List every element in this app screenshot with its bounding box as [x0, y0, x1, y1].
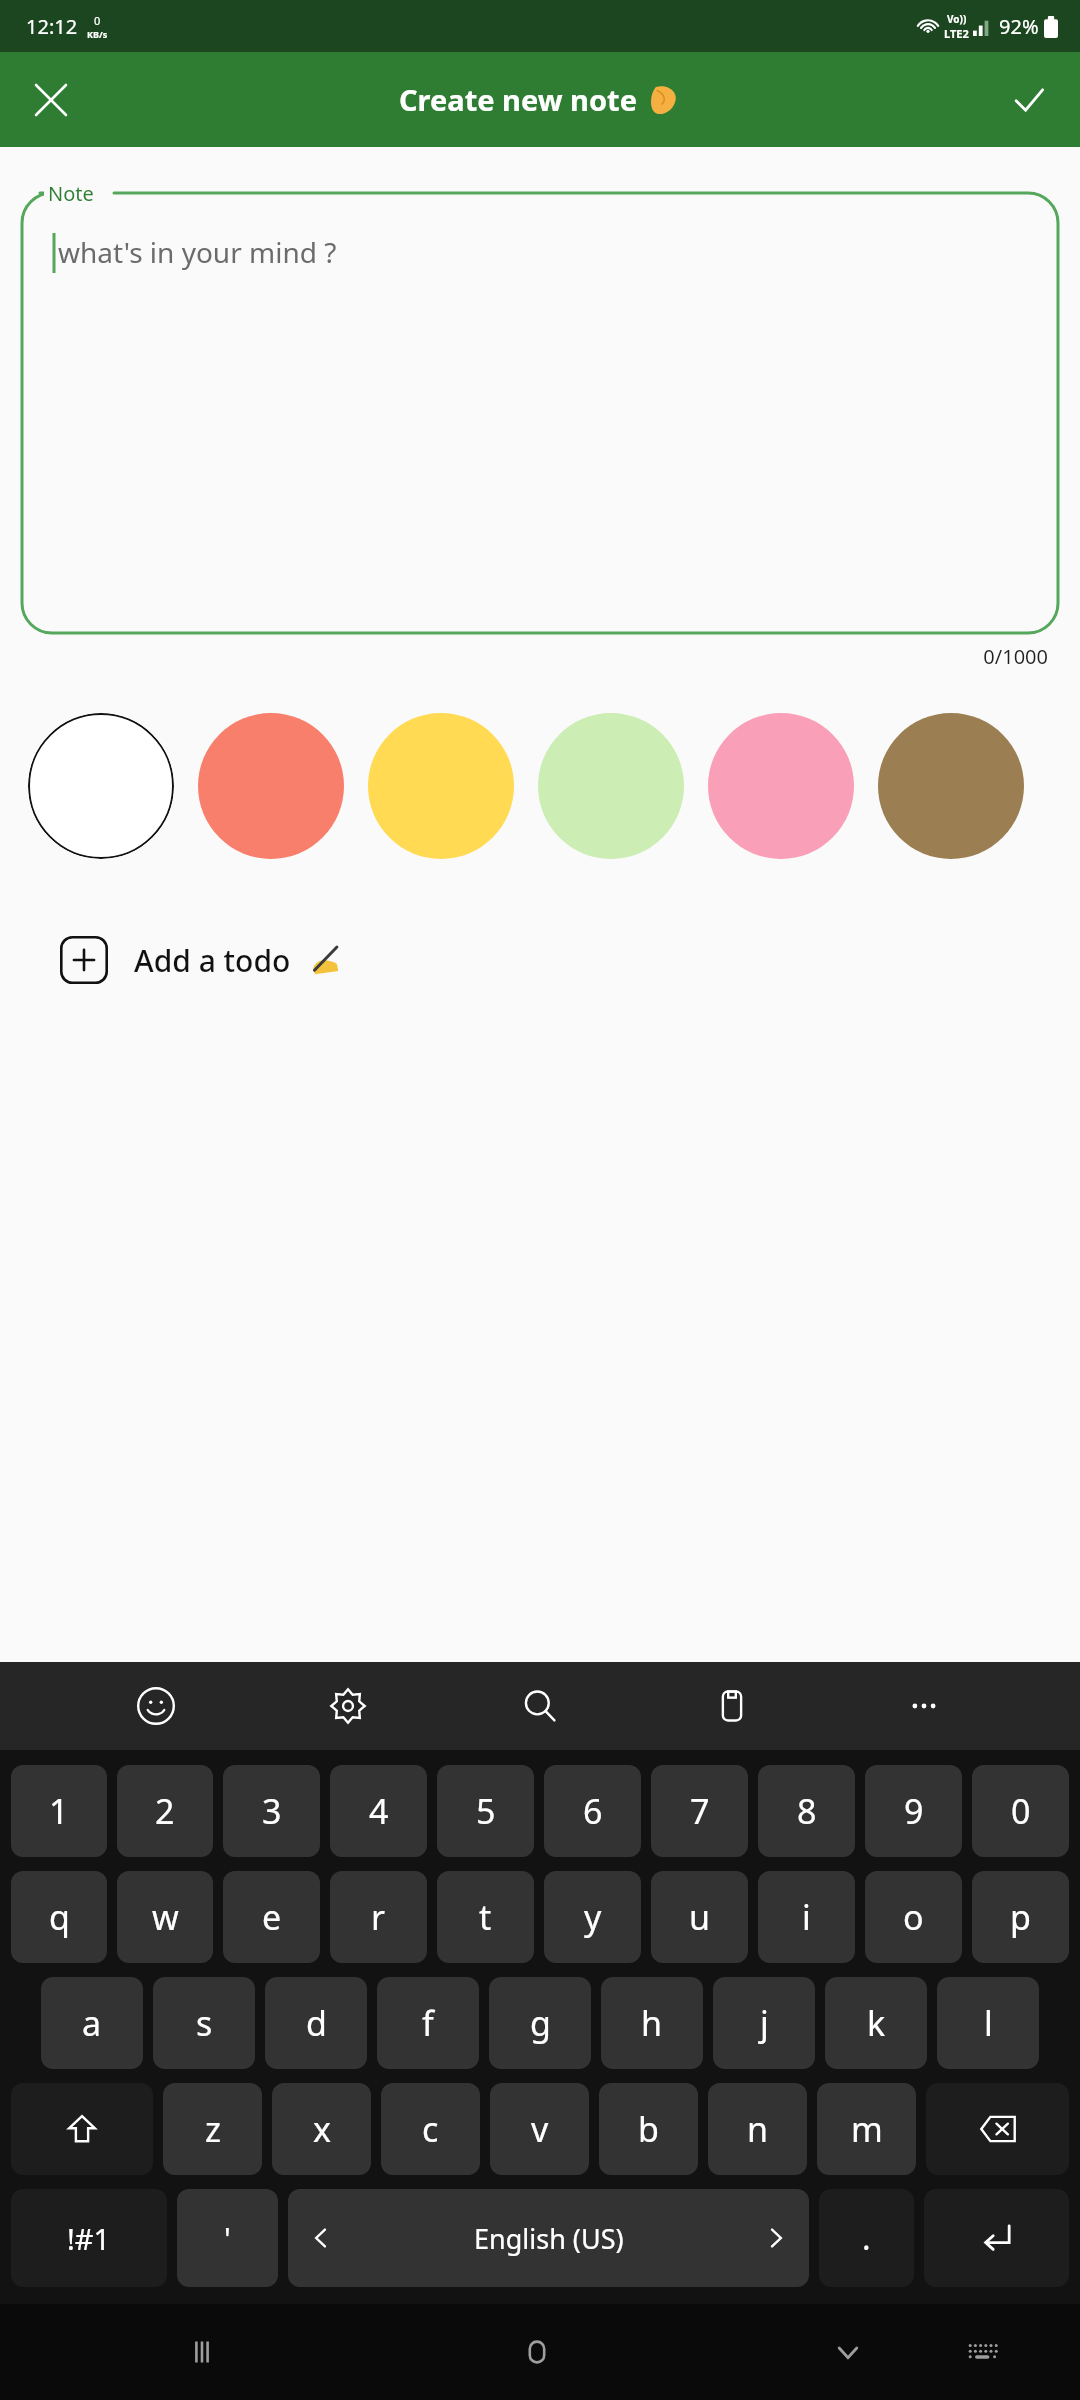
- button[interactable]: o: [865, 1871, 962, 1963]
- button[interactable]: 2: [117, 1765, 213, 1857]
- button[interactable]: Note colour 5: [878, 713, 1024, 859]
- staticText: i: [802, 1894, 811, 1940]
- staticText: y: [584, 1894, 602, 1940]
- staticText: .: [862, 2216, 871, 2260]
- button[interactable]: r: [330, 1871, 427, 1963]
- button[interactable]: .: [819, 2189, 914, 2287]
- staticText: k: [867, 2000, 886, 2046]
- button[interactable]: Note colour 4: [708, 713, 854, 859]
- button[interactable]: i: [758, 1871, 855, 1963]
- staticText: d: [306, 2000, 327, 2046]
- staticText: x: [313, 2106, 331, 2152]
- button[interactable]: g: [489, 1977, 591, 2069]
- staticText: s: [196, 2000, 213, 2046]
- staticText: 2: [155, 1788, 175, 1834]
- button[interactable]: z: [163, 2083, 262, 2175]
- button[interactable]: h: [601, 1977, 703, 2069]
- staticText: English (US): [474, 2220, 624, 2257]
- button[interactable]: p: [972, 1871, 1069, 1963]
- button[interactable]: m: [817, 2083, 916, 2175]
- staticText: Add a todo: [134, 940, 291, 981]
- staticText: p: [1010, 1894, 1031, 1940]
- button[interactable]: f: [377, 1977, 479, 2069]
- button[interactable]: 6: [544, 1765, 641, 1857]
- button[interactable]: 5: [437, 1765, 534, 1857]
- button[interactable]: 1: [11, 1765, 107, 1857]
- button[interactable]: Home: [499, 2314, 575, 2390]
- staticText: l: [984, 2000, 993, 2046]
- staticText: 92%: [999, 13, 1039, 40]
- button[interactable]: Note: [22, 181, 1058, 633]
- button[interactable]: 3: [223, 1765, 320, 1857]
- button[interactable]: 4: [330, 1765, 427, 1857]
- button[interactable]: !#1: [11, 2189, 167, 2287]
- button[interactable]: Enter: [924, 2189, 1069, 2287]
- staticText: u: [689, 1894, 711, 1940]
- button[interactable]: Switch keyboard: [945, 2314, 1021, 2390]
- staticText: 8: [797, 1788, 817, 1834]
- button[interactable]: n: [708, 2083, 807, 2175]
- staticText: 6: [583, 1788, 603, 1834]
- button[interactable]: t: [437, 1871, 534, 1963]
- button[interactable]: x: [272, 2083, 371, 2175]
- staticText: 4: [369, 1788, 389, 1834]
- button[interactable]: 0: [972, 1765, 1069, 1857]
- button[interactable]: ': [177, 2189, 278, 2287]
- button[interactable]: Settings: [312, 1670, 384, 1742]
- button[interactable]: Add a todo: [60, 924, 341, 996]
- staticText: e: [262, 1894, 282, 1940]
- button[interactable]: More options: [888, 1670, 960, 1742]
- staticText: a: [82, 2000, 102, 2046]
- button[interactable]: Search: [504, 1670, 576, 1742]
- staticText: h: [641, 2000, 663, 2046]
- staticText: m: [851, 2106, 883, 2152]
- button[interactable]: Recents: [164, 2314, 240, 2390]
- button[interactable]: l: [937, 1977, 1039, 2069]
- button[interactable]: a: [41, 1977, 143, 2069]
- staticText: q: [49, 1894, 70, 1940]
- button[interactable]: e: [223, 1871, 320, 1963]
- staticText: 5: [476, 1788, 496, 1834]
- staticText: c: [422, 2106, 439, 2152]
- button[interactable]: Clipboard: [696, 1670, 768, 1742]
- staticText: b: [638, 2106, 659, 2152]
- button[interactable]: Note colour 1: [198, 713, 344, 859]
- button[interactable]: w: [117, 1871, 213, 1963]
- button[interactable]: d: [265, 1977, 367, 2069]
- staticText: n: [747, 2106, 769, 2152]
- staticText: !#1: [67, 2219, 111, 2258]
- staticText: w: [152, 1894, 179, 1940]
- staticText: o: [903, 1894, 924, 1940]
- button[interactable]: 7: [651, 1765, 748, 1857]
- staticText: g: [530, 2000, 551, 2046]
- button[interactable]: Hide keyboard: [810, 2314, 886, 2390]
- button[interactable]: Emoji: [120, 1670, 192, 1742]
- staticText: 0/1000: [0, 643, 1048, 670]
- staticText: what's in your mind ?: [58, 233, 337, 271]
- button[interactable]: 8: [758, 1765, 855, 1857]
- button[interactable]: Backspace: [926, 2083, 1069, 2175]
- button[interactable]: j: [713, 1977, 815, 2069]
- button[interactable]: k: [825, 1977, 927, 2069]
- button[interactable]: 9: [865, 1765, 962, 1857]
- button[interactable]: Close: [22, 71, 80, 129]
- staticText: 12:12: [26, 13, 78, 40]
- button[interactable]: Note colour 2: [368, 713, 514, 859]
- staticText: z: [205, 2106, 221, 2152]
- button[interactable]: q: [11, 1871, 107, 1963]
- button[interactable]: u: [651, 1871, 748, 1963]
- staticText: 3: [262, 1788, 282, 1834]
- button[interactable]: Shift: [11, 2083, 153, 2175]
- button[interactable]: Note colour 0: [28, 713, 174, 859]
- button[interactable]: c: [381, 2083, 480, 2175]
- staticText: 9: [904, 1788, 924, 1834]
- button[interactable]: b: [599, 2083, 698, 2175]
- staticText: LTE2: [944, 26, 969, 41]
- button[interactable]: Note colour 3: [538, 713, 684, 859]
- button[interactable]: s: [153, 1977, 255, 2069]
- button[interactable]: English (US): [288, 2189, 809, 2287]
- staticText: Note: [48, 180, 94, 207]
- button[interactable]: Save note: [1000, 71, 1058, 129]
- button[interactable]: y: [544, 1871, 641, 1963]
- button[interactable]: v: [490, 2083, 589, 2175]
